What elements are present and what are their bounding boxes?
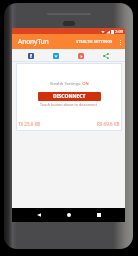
staticText: RX 69.6 KB	[97, 121, 120, 127]
button[interactable]: Share	[100, 50, 112, 62]
staticText: AnonyTun	[18, 37, 49, 46]
staticText: TX 23.6 KB	[18, 121, 41, 127]
button[interactable]: DISCONNECT	[38, 92, 101, 101]
button[interactable]: Twitter	[50, 50, 62, 62]
button[interactable]: Back	[33, 209, 45, 221]
staticText: Stealth Settings: ON	[50, 81, 89, 87]
button[interactable]: STEALTH SETTINGS	[74, 36, 115, 47]
staticText: DISCONNECT	[53, 93, 86, 100]
staticText: 7:00	[115, 29, 123, 34]
button[interactable]: Recents	[93, 209, 105, 221]
button[interactable]: More options	[115, 37, 125, 47]
button[interactable]: Home	[63, 209, 75, 221]
button[interactable]: YouTube	[75, 50, 87, 62]
staticText: Touch button above to disconnect	[40, 102, 98, 107]
staticText: f	[30, 53, 32, 59]
button[interactable]: Facebook	[25, 50, 37, 62]
staticText: STEALTH SETTINGS	[76, 39, 113, 44]
